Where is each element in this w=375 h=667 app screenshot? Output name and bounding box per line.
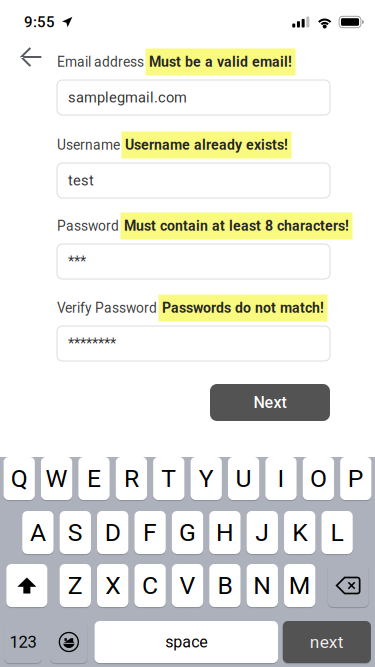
staticText: K	[292, 518, 307, 547]
staticText: Password	[57, 218, 119, 234]
button[interactable]: I	[265, 457, 297, 500]
staticText: M	[289, 571, 311, 600]
button[interactable]: C	[134, 564, 166, 607]
staticText: Must be a valid email!	[149, 54, 292, 70]
button[interactable]: H	[209, 511, 240, 554]
staticText: Y	[199, 464, 214, 493]
button[interactable]: M	[284, 564, 315, 607]
button[interactable]: G	[172, 511, 203, 554]
staticText: test	[68, 172, 94, 189]
staticText: 123	[9, 632, 36, 652]
staticText: F	[143, 518, 157, 547]
staticText: next	[310, 632, 344, 652]
staticText: I	[277, 464, 284, 493]
button[interactable]: T	[153, 457, 184, 500]
button[interactable]: Shift	[6, 564, 47, 607]
button[interactable]: Next	[210, 384, 330, 421]
button[interactable]: L	[321, 511, 353, 554]
staticText: N	[253, 571, 271, 600]
staticText: W	[46, 464, 68, 493]
button[interactable]: X	[97, 564, 128, 607]
staticText: Z	[68, 571, 83, 600]
staticText: S	[68, 518, 83, 547]
button[interactable]: U	[228, 457, 259, 500]
staticText: H	[216, 518, 234, 547]
button[interactable]: Q	[3, 457, 35, 500]
button[interactable]: S	[60, 511, 91, 554]
staticText: ***	[68, 253, 86, 270]
button[interactable]: W	[41, 457, 72, 500]
staticText: ********	[68, 335, 116, 352]
staticText: Passwords do not match!	[162, 300, 324, 316]
staticText: C	[142, 571, 158, 600]
button[interactable]: J	[247, 511, 278, 554]
staticText: P	[348, 464, 364, 493]
button[interactable]: Emoji	[50, 621, 88, 663]
staticText: A	[30, 518, 46, 547]
button[interactable]: N	[247, 564, 278, 607]
staticText: space	[165, 633, 207, 651]
staticText: L	[331, 518, 344, 547]
button[interactable]: O	[303, 457, 334, 500]
staticText: V	[179, 571, 195, 600]
staticText: Username	[57, 137, 120, 153]
button[interactable]: B	[209, 564, 240, 607]
button[interactable]: Z	[60, 564, 91, 607]
button[interactable]: next	[283, 621, 371, 663]
staticText: O	[310, 464, 327, 493]
button[interactable]: A	[22, 511, 53, 554]
button[interactable]: Back	[8, 39, 52, 75]
staticText: R	[124, 464, 139, 493]
staticText: B	[217, 571, 232, 600]
staticText: J	[255, 518, 269, 547]
button[interactable]: space	[94, 621, 278, 663]
staticText: Q	[11, 464, 28, 493]
staticText: G	[179, 518, 196, 547]
staticText: U	[236, 464, 252, 493]
staticText: Email address	[57, 54, 144, 70]
button[interactable]: V	[172, 564, 203, 607]
staticText: Username already exists!	[125, 137, 288, 153]
button[interactable]: 123	[4, 621, 42, 663]
button[interactable]: E	[78, 457, 110, 500]
staticText: 9:55	[24, 13, 55, 31]
button[interactable]: Y	[190, 457, 222, 500]
button[interactable]: Delete	[328, 564, 369, 607]
staticText: Verify Password	[57, 300, 157, 316]
staticText: T	[161, 464, 176, 493]
button[interactable]: K	[284, 511, 315, 554]
staticText: X	[105, 571, 120, 600]
staticText: Next	[253, 393, 286, 412]
button[interactable]: P	[340, 457, 371, 500]
staticText: samplegmail.com	[68, 89, 187, 106]
staticText: D	[105, 518, 121, 547]
button[interactable]: D	[97, 511, 128, 554]
staticText: E	[87, 464, 101, 493]
button[interactable]: F	[134, 511, 166, 554]
staticText: Must contain at least 8 characters!	[124, 218, 349, 234]
button[interactable]: R	[116, 457, 147, 500]
